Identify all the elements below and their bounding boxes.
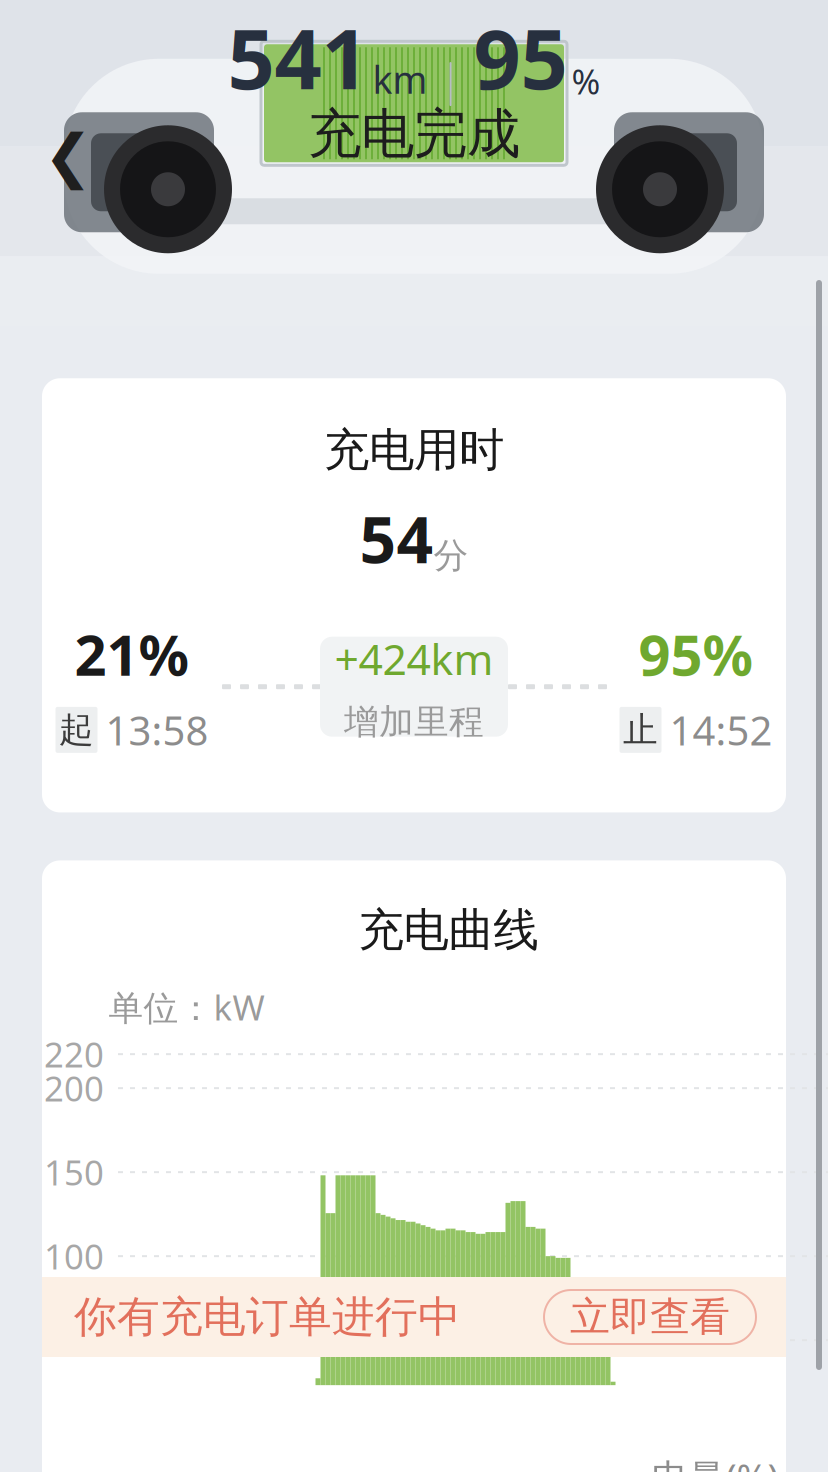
- staticText: 220: [44, 1031, 104, 1077]
- button[interactable]: 立即查看: [544, 1290, 756, 1344]
- staticText: 200: [44, 1065, 104, 1111]
- staticText: 立即查看: [570, 1292, 730, 1341]
- staticText: 分: [433, 534, 468, 577]
- staticText: 增加里程: [344, 701, 484, 743]
- staticText: km: [372, 54, 427, 104]
- staticText: 充电用时: [324, 422, 504, 478]
- staticText: 起: [59, 709, 94, 751]
- staticText: 止: [623, 709, 658, 751]
- staticText: 95: [473, 2, 567, 112]
- staticText: +424km: [334, 630, 493, 687]
- staticText: 充电曲线: [358, 902, 538, 958]
- staticText: 电量(%): [651, 1452, 778, 1472]
- button[interactable]: 返回: [30, 118, 106, 194]
- staticText: 541: [227, 2, 368, 112]
- staticText: %: [571, 58, 600, 104]
- staticText: 50: [64, 1317, 104, 1363]
- staticText: 14:52: [669, 703, 772, 756]
- staticText: 充电完成: [308, 101, 520, 167]
- staticText: 150: [44, 1149, 104, 1195]
- staticText: 100: [44, 1233, 104, 1279]
- staticText: 95%: [638, 617, 753, 691]
- staticText: 21%: [74, 617, 189, 691]
- staticText: 单位：kW: [108, 984, 264, 1030]
- staticText: 你有充电订单进行中: [74, 1291, 461, 1343]
- staticText: 54: [359, 496, 433, 581]
- staticText: ❮: [43, 123, 92, 189]
- staticText: 13:58: [105, 703, 208, 756]
